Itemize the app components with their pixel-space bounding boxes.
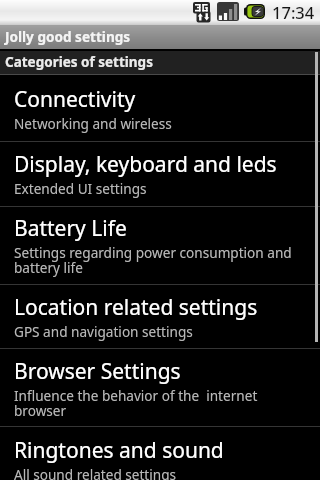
staticText: Ringtones and sound (14, 436, 224, 465)
button[interactable]: Connectivity (0, 75, 320, 141)
staticText: Jolly good settings (5, 27, 131, 46)
staticText: Battery Life (14, 214, 127, 243)
staticText: Browser Settings (14, 357, 181, 386)
staticText: Influence the behavior of the internet b… (14, 386, 304, 420)
button[interactable]: Ringtones and sound (0, 427, 320, 480)
button[interactable]: Location related settings (0, 285, 320, 348)
staticText: GPS and navigation settings (14, 322, 193, 341)
staticText: Display, keyboard and leds (14, 150, 277, 179)
staticText: 17:34 (272, 1, 315, 23)
button[interactable]: Browser Settings (0, 349, 320, 426)
staticText: Extended UI settings (14, 179, 147, 198)
staticText: Connectivity (14, 85, 136, 114)
staticText: Location related settings (14, 293, 258, 322)
button[interactable]: Battery Life (0, 207, 320, 284)
staticText: Categories of settings (5, 53, 153, 71)
staticText: Networking and wireless (14, 114, 172, 133)
staticText: Settings regarding power consumption and… (14, 243, 304, 277)
staticText: All sound related settings (14, 465, 177, 480)
button[interactable]: Display, keyboard and leds (0, 142, 320, 206)
